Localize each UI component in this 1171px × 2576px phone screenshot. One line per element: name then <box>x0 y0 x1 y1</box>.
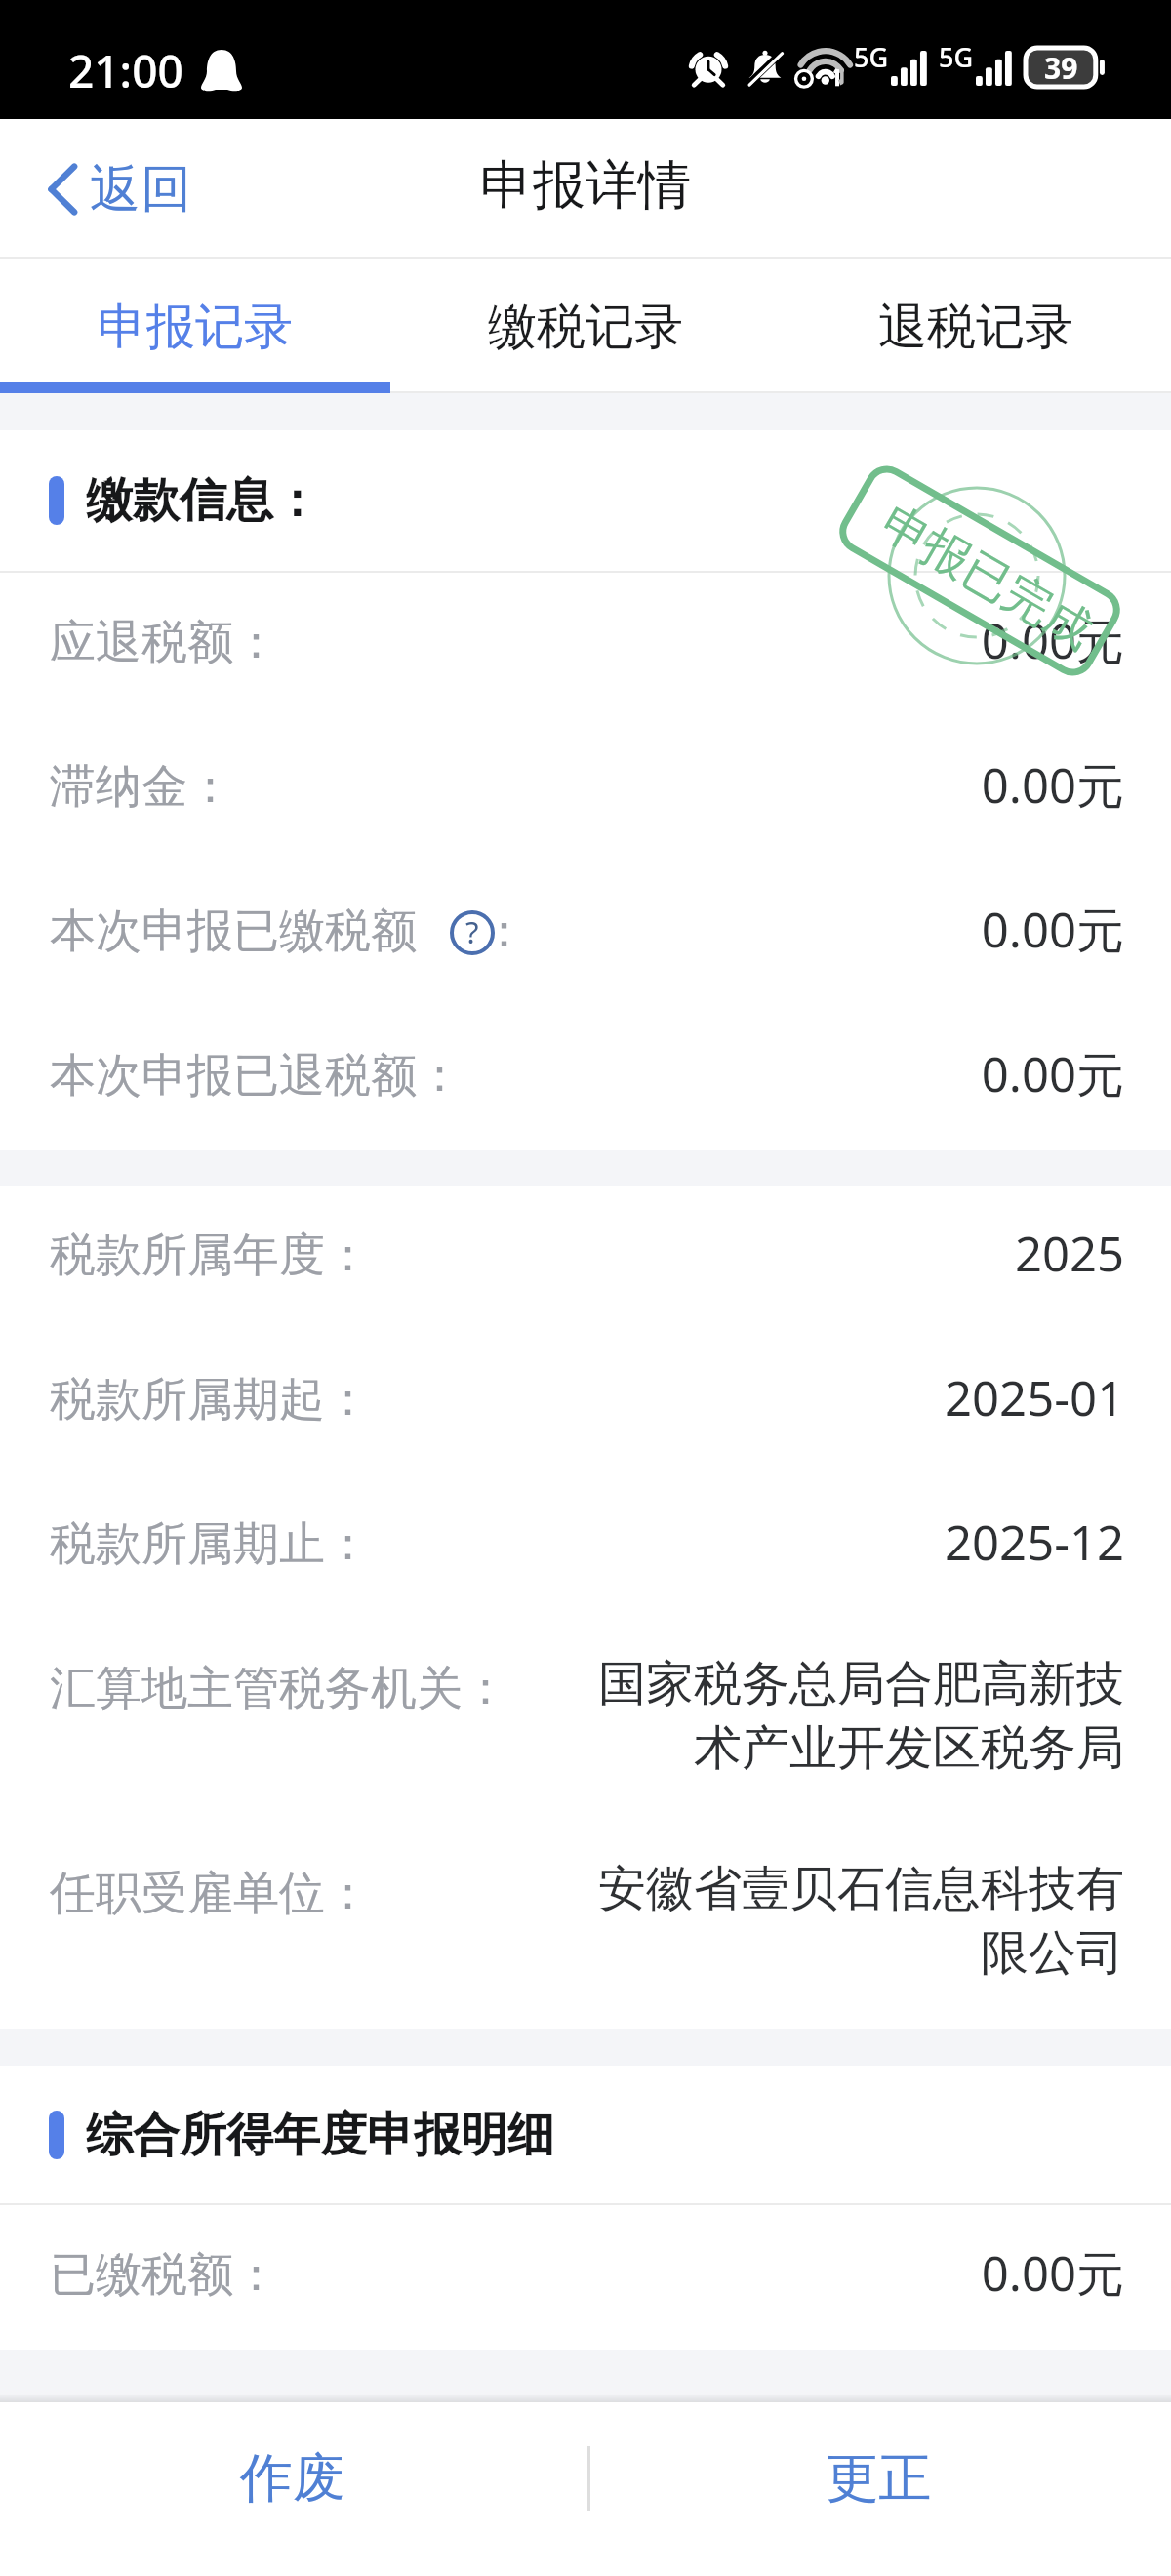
staticText: 已缴税额： <box>50 2246 279 2304</box>
staticText: 0.00元 <box>592 1041 1124 1107</box>
staticText: 综合所得年度申报明细 <box>86 2106 554 2164</box>
staticText: 2025-12 <box>592 1509 1124 1575</box>
staticText: 应退税额： <box>50 614 279 671</box>
staticText: 39 <box>1044 48 1078 87</box>
staticText: 返回 <box>90 157 191 221</box>
staticText: 更正 <box>826 2445 931 2512</box>
staticText: 0.00元 <box>592 752 1124 818</box>
staticText: 税款所属年度： <box>50 1227 371 1284</box>
staticText: 税款所属期起： <box>50 1371 371 1429</box>
staticText: 作废 <box>240 2445 345 2512</box>
staticText: 本次申报已缴税额 <box>50 903 417 960</box>
button[interactable]: 申报记录 <box>0 259 390 393</box>
staticText: 税款所属期止： <box>50 1515 371 1573</box>
button[interactable]: 更正 <box>585 2402 1171 2575</box>
staticText: 申报记录 <box>98 297 293 358</box>
staticText: 国家税务总局合肥高新技术产业开发区税务局 <box>592 1654 1124 1779</box>
button[interactable]: 作废 <box>0 2402 585 2575</box>
staticText: 0.00元 <box>592 608 1124 673</box>
staticText: 21:00 <box>68 40 183 101</box>
staticText: 安徽省壹贝石信息科技有限公司 <box>592 1859 1124 1984</box>
button[interactable]: 说明 <box>450 910 495 955</box>
staticText: 申报已完成 <box>871 494 1103 661</box>
staticText: 申报详情 <box>480 152 691 219</box>
staticText: ? <box>465 911 479 952</box>
staticText: 0.00元 <box>592 2240 1124 2306</box>
staticText: 5G <box>939 39 974 75</box>
staticText: 缴税记录 <box>488 297 683 358</box>
staticText: 滞纳金： <box>50 758 233 816</box>
staticText: 任职受雇单位： <box>50 1865 371 1922</box>
button[interactable]: 返回 <box>0 136 215 243</box>
staticText: 0.00元 <box>592 897 1124 962</box>
staticText: 2025-01 <box>592 1365 1124 1430</box>
staticText: 汇算地主管税务机关： <box>50 1660 508 1717</box>
button[interactable]: 缴税记录 <box>390 259 781 393</box>
staticText: 本次申报已退税额： <box>50 1047 463 1105</box>
staticText: 缴款信息： <box>86 471 320 530</box>
staticText: 5G <box>854 39 889 75</box>
staticText: 退税记录 <box>878 297 1073 358</box>
button[interactable]: 退税记录 <box>781 259 1171 393</box>
staticText: ： <box>481 903 527 960</box>
staticText: 2025 <box>592 1221 1124 1286</box>
